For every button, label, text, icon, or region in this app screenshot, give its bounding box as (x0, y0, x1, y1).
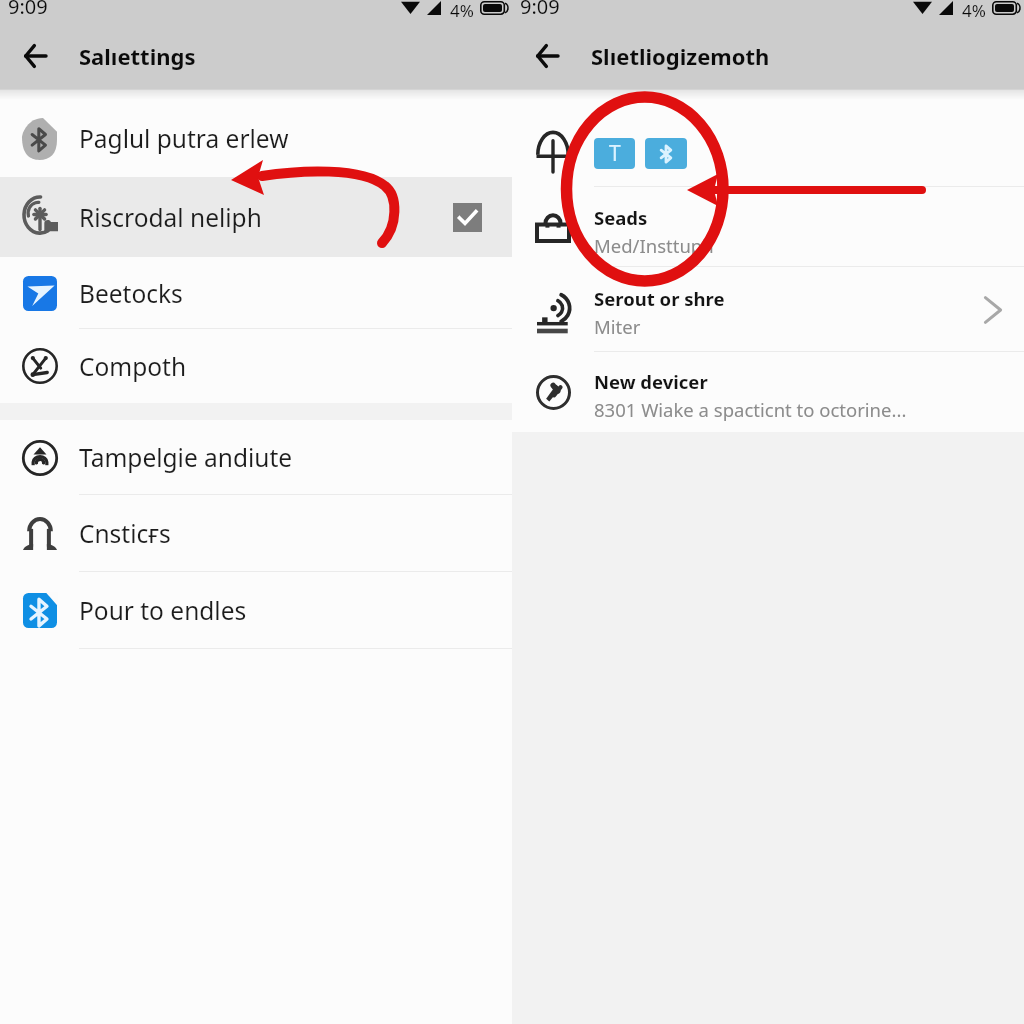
button[interactable]: Beetocks (0, 257, 512, 329)
staticText: Compoth (79, 350, 187, 383)
staticText: 4% (962, 0, 986, 22)
button[interactable]: Riscrodal neliph (0, 177, 512, 257)
staticText: Pour to endles (79, 594, 247, 627)
button[interactable]: Serout or shre (512, 267, 1024, 352)
staticText: Cnsticғs (79, 517, 171, 550)
button[interactable]: Back (524, 33, 570, 80)
button[interactable]: Seads (512, 187, 1024, 267)
button[interactable]: Tampelgie andiute (0, 420, 512, 495)
staticText: Paglul putra erlew (79, 122, 289, 155)
staticText: T (609, 139, 621, 168)
staticText: 8301 Wiake a spacticnt to octorine... (594, 397, 907, 422)
button[interactable]: Back (12, 33, 58, 80)
staticText: Tampelgie andiute (79, 441, 293, 474)
button[interactable]: Paglul putra erlew (0, 100, 512, 177)
button[interactable]: Bluetooth (645, 138, 687, 169)
staticText: New devicer (594, 369, 708, 394)
staticText: Salıettings (79, 41, 196, 71)
staticText: Beetocks (79, 277, 183, 310)
button[interactable]: New devicer (512, 352, 1024, 432)
staticText: 9:09 (520, 0, 560, 20)
button[interactable]: Cnsticғs (0, 495, 512, 572)
button[interactable]: Pour to endles (0, 572, 512, 649)
button[interactable]: T (594, 138, 635, 169)
staticText: Riscrodal neliph (79, 201, 262, 234)
staticText: Slıetliogizemoth (591, 41, 770, 71)
staticText: Seads (594, 205, 648, 230)
staticText: Miter (594, 314, 641, 339)
button[interactable]: Compoth (0, 329, 512, 403)
staticText: 4% (450, 0, 474, 22)
staticText: 9:09 (8, 0, 48, 20)
staticText: Serout or shre (594, 286, 725, 311)
staticText: Med/Insttuph (594, 233, 714, 258)
